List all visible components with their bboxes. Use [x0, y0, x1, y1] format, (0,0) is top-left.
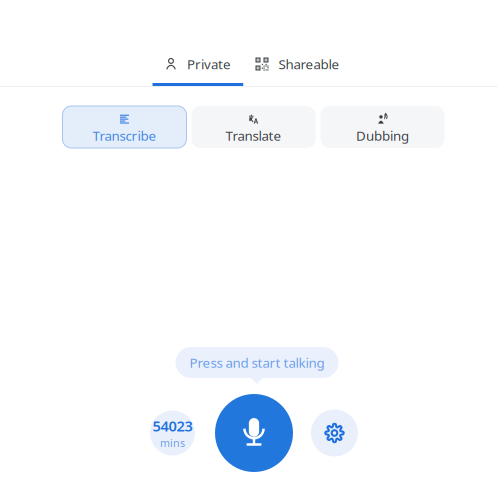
button[interactable]: Record: [215, 394, 293, 472]
button[interactable]: Private: [152, 45, 243, 86]
button[interactable]: 54023: [150, 410, 195, 455]
button[interactable]: Translate: [191, 106, 315, 148]
staticText: Private: [187, 55, 231, 73]
staticText: Dubbing: [356, 127, 409, 144]
staticText: Transcribe: [92, 127, 156, 144]
staticText: Shareable: [278, 55, 339, 73]
staticText: mins: [160, 436, 185, 450]
button[interactable]: Transcribe: [62, 106, 186, 148]
button[interactable]: Dubbing: [320, 106, 444, 148]
staticText: Press and start talking: [189, 354, 324, 371]
staticText: Translate: [225, 127, 281, 144]
button[interactable]: Settings: [311, 409, 358, 456]
staticText: 54023: [152, 416, 192, 436]
button[interactable]: Shareable: [243, 45, 351, 86]
